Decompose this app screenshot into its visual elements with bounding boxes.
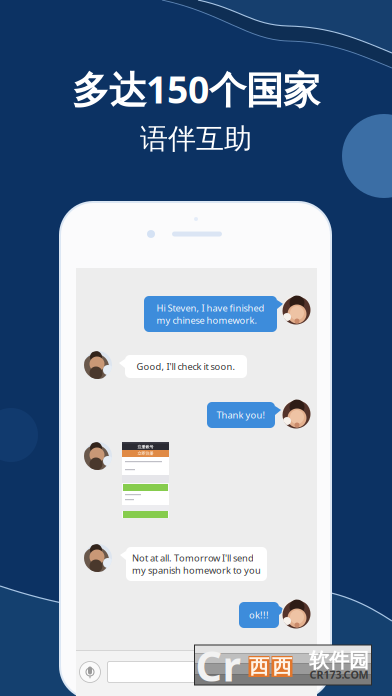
staticText: Good, I'll check it soon.	[136, 360, 235, 373]
staticText: CR173.COM	[309, 667, 368, 682]
staticText: Thank you!	[216, 409, 265, 421]
staticText: 注册账号	[137, 444, 153, 449]
staticText: 西	[249, 654, 269, 679]
staticText: Not at all. Tomorrow I'll send my spanis…	[132, 552, 261, 576]
staticText: ok!!!	[249, 609, 269, 621]
staticText: 多达150个国家	[72, 64, 320, 114]
staticText: Cr	[195, 638, 240, 693]
staticText: 语伴互助	[140, 122, 252, 156]
staticText: 立即注册	[137, 451, 153, 456]
staticText: 西	[272, 654, 292, 679]
staticText: 软件园	[309, 648, 369, 673]
staticText: Hi Steven, I have finished my chinese ho…	[156, 302, 264, 326]
